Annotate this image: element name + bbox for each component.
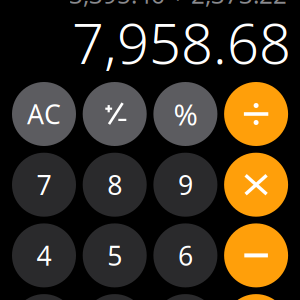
staticText: AC (27, 96, 61, 132)
button[interactable]: 8 (83, 153, 147, 217)
button[interactable]: Plus (224, 294, 288, 300)
staticText: 5 (107, 238, 122, 273)
button[interactable]: 5 (83, 223, 147, 287)
button[interactable]: 1 (12, 294, 76, 300)
button[interactable]: 2 (83, 294, 147, 300)
staticText: 7,958.68 (72, 5, 291, 79)
staticText: 7 (36, 167, 51, 202)
staticText: 8 (107, 167, 122, 202)
button[interactable]: 3 (153, 294, 217, 300)
staticText: % (173, 94, 197, 133)
button[interactable]: Multiply (224, 153, 288, 217)
staticText: 3,395.46 + 2,373.22 (69, 0, 287, 10)
staticText: 4 (36, 238, 51, 273)
button[interactable]: 6 (153, 223, 217, 287)
button[interactable]: Minus (224, 223, 288, 287)
button[interactable]: 4 (12, 223, 76, 287)
button[interactable]: 9 (153, 153, 217, 217)
staticText: 6 (178, 238, 193, 273)
button[interactable]: Plus or minus (83, 82, 147, 146)
button[interactable]: 7 (12, 153, 76, 217)
button[interactable]: AC (12, 82, 76, 146)
staticText: 9 (178, 167, 193, 202)
button[interactable]: % (153, 82, 217, 146)
button[interactable]: Divide (224, 82, 288, 146)
